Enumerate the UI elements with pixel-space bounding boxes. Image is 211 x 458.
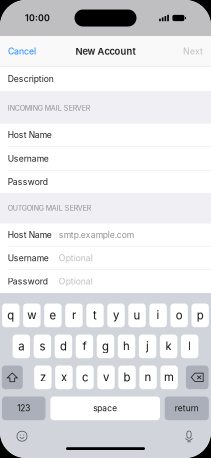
button[interactable]: q <box>2 303 19 327</box>
button[interactable]: z <box>34 365 52 389</box>
staticText: p <box>197 308 204 322</box>
staticText: b <box>123 370 130 384</box>
staticText: space <box>93 403 117 413</box>
button[interactable]: Next <box>175 36 211 66</box>
button[interactable]: x <box>55 365 73 389</box>
staticText: Description <box>8 74 54 84</box>
staticText: return <box>175 403 199 413</box>
staticText: o <box>176 308 183 322</box>
staticText: i <box>157 308 160 322</box>
staticText: n <box>145 370 152 384</box>
staticText: f <box>82 339 86 353</box>
staticText: a <box>18 339 24 353</box>
button[interactable]: m <box>160 365 178 389</box>
staticText: Cancel <box>8 46 36 56</box>
button[interactable]: s <box>34 334 51 358</box>
staticText: Host Name <box>8 130 52 140</box>
staticText: INCOMING MAIL SERVER <box>8 104 91 112</box>
staticText: w <box>27 308 36 322</box>
staticText: e <box>49 308 56 322</box>
button[interactable]: i <box>149 303 167 327</box>
button[interactable]: Delete <box>186 365 209 389</box>
button[interactable]: 123 <box>2 396 45 420</box>
button[interactable]: p <box>191 303 209 327</box>
button[interactable]: r <box>65 303 83 327</box>
staticText: 10:00 <box>25 13 50 23</box>
staticText: OUTGOING MAIL SERVER <box>8 204 92 212</box>
button[interactable]: c <box>76 365 94 389</box>
button[interactable]: h <box>118 334 135 358</box>
staticText: u <box>134 308 141 322</box>
button[interactable]: Shift <box>2 365 23 389</box>
staticText: New Account <box>75 46 135 57</box>
staticText: h <box>123 339 130 353</box>
staticText: q <box>7 308 14 322</box>
button[interactable]: t <box>86 303 104 327</box>
staticText: j <box>146 339 149 353</box>
button[interactable]: e <box>44 303 62 327</box>
button[interactable]: v <box>97 365 115 389</box>
button[interactable]: d <box>55 334 72 358</box>
staticText: c <box>82 370 88 384</box>
staticText: s <box>39 339 45 353</box>
button[interactable]: b <box>118 365 136 389</box>
staticText: x <box>61 370 67 384</box>
staticText: m <box>164 370 174 384</box>
button[interactable]: Username <box>0 147 211 171</box>
button[interactable]: a <box>13 334 30 358</box>
staticText: Host Name <box>8 230 52 240</box>
staticText: 123 <box>17 403 30 413</box>
button[interactable]: f <box>76 334 93 358</box>
button[interactable]: Cancel <box>0 36 44 66</box>
staticText: Next <box>183 46 203 56</box>
staticText: t <box>93 308 97 322</box>
staticText: Password <box>8 177 48 187</box>
button[interactable]: u <box>128 303 146 327</box>
button[interactable]: Dictation <box>180 428 198 444</box>
button[interactable]: Password <box>0 270 211 293</box>
staticText: Optional <box>59 276 93 287</box>
button[interactable]: j <box>139 334 156 358</box>
staticText: d <box>60 339 67 353</box>
button[interactable]: n <box>139 365 157 389</box>
staticText: Password <box>8 276 48 287</box>
button[interactable]: o <box>170 303 188 327</box>
button[interactable]: k <box>160 334 177 358</box>
button[interactable]: Host Name <box>0 223 211 247</box>
button[interactable]: l <box>181 334 198 358</box>
button[interactable]: Host Name <box>0 123 211 147</box>
button[interactable]: w <box>23 303 41 327</box>
staticText: r <box>72 308 76 322</box>
staticText: Optional <box>59 253 93 263</box>
button[interactable]: Emoji <box>13 428 31 444</box>
button[interactable]: y <box>107 303 125 327</box>
staticText: smtp.example.com <box>59 230 134 240</box>
staticText: l <box>188 339 191 353</box>
button[interactable]: Description <box>0 67 211 91</box>
staticText: y <box>113 308 119 322</box>
staticText: v <box>103 370 109 384</box>
staticText: Username <box>8 154 49 164</box>
button[interactable]: g <box>97 334 114 358</box>
button[interactable]: Username <box>0 247 211 270</box>
button[interactable]: space <box>50 396 160 420</box>
button[interactable]: Password <box>0 171 211 193</box>
staticText: Username <box>8 253 49 263</box>
button[interactable]: return <box>165 396 209 420</box>
staticText: z <box>40 370 46 384</box>
staticText: g <box>102 339 109 353</box>
staticText: k <box>166 339 172 353</box>
